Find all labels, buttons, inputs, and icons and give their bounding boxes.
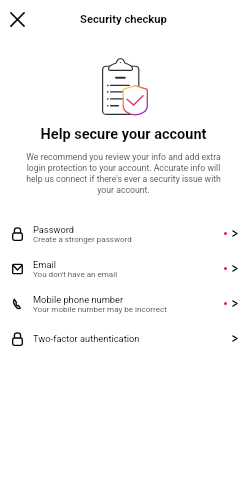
- staticText: Two-factor authentication: [33, 333, 140, 344]
- staticText: We recommend you review your info and ad…: [24, 152, 223, 195]
- staticText: You don't have an email: [33, 270, 118, 279]
- staticText: Create a stronger password: [33, 235, 132, 244]
- button[interactable]: Email: [0, 251, 247, 286]
- button[interactable]: Close: [5, 7, 30, 32]
- staticText: Help secure your account: [0, 126, 247, 143]
- staticText: Password: [33, 224, 75, 235]
- staticText: Your mobile number may be incorrect: [33, 305, 167, 314]
- button[interactable]: Password: [0, 216, 247, 251]
- button[interactable]: Mobile phone number: [0, 286, 247, 321]
- button[interactable]: Two-factor authentication: [0, 321, 247, 356]
- staticText: Security checkup: [0, 13, 247, 26]
- staticText: Mobile phone number: [33, 294, 124, 305]
- staticText: Email: [33, 259, 57, 270]
